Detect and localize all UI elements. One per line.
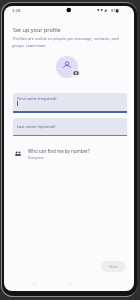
staticText: Last name (optional) — [17, 124, 56, 129]
button[interactable]: Last name (optional) — [13, 118, 127, 136]
button[interactable]: Profile photo — [56, 56, 78, 78]
button[interactable]: Next — [101, 261, 125, 272]
button[interactable]: Home — [66, 280, 75, 289]
staticText: 85% — [111, 8, 120, 14]
button[interactable]: First name (required) — [13, 93, 127, 113]
staticText: groups. — [12, 43, 25, 48]
staticText: Profiles are visible to people you messa… — [13, 36, 119, 41]
staticText: 3:28 — [12, 8, 21, 14]
staticText: Who can find me by number? — [28, 148, 90, 154]
staticText: Set up your profile — [13, 26, 61, 33]
staticText: Everyone — [28, 155, 44, 160]
button[interactable]: Learn more — [26, 43, 46, 48]
staticText: Next — [109, 264, 118, 269]
button[interactable]: Recent apps — [30, 280, 39, 289]
button[interactable]: Change profile photo — [72, 69, 80, 77]
button[interactable]: Who can find me by number? — [13, 146, 133, 162]
staticText: First name (required) — [17, 96, 57, 101]
